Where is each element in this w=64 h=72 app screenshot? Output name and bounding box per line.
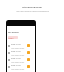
staticText: Pixel 7 Pro xyxy=(11,43,21,46)
button[interactable]: Action needed xyxy=(8,36,18,39)
staticText: Pixel 7 Pro xyxy=(11,50,21,53)
staticText: Pixel 7 Pro xyxy=(11,64,21,67)
staticText: My Roam xyxy=(8,31,19,34)
other: Status xyxy=(27,65,30,68)
button[interactable]: Device xyxy=(7,63,35,70)
button[interactable]: Device xyxy=(7,49,35,56)
staticText: Last seen today xyxy=(11,54,25,56)
staticText: Introducing Roam xyxy=(22,6,42,9)
other: Status xyxy=(27,51,30,54)
staticText: Pixel 7 Pro xyxy=(11,57,21,60)
button[interactable]: Device xyxy=(7,56,35,63)
staticText: Last seen today xyxy=(11,68,25,70)
staticText: Your new home for device management xyxy=(16,10,49,12)
staticText: Action needed xyxy=(8,37,18,39)
staticText: Last seen today xyxy=(11,47,25,49)
other: Status xyxy=(27,44,30,47)
staticText: Last seen today xyxy=(11,61,25,63)
other: Status xyxy=(27,58,30,61)
button[interactable]: Device xyxy=(7,42,35,49)
